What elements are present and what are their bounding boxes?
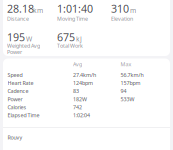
staticText: kJ	[76, 34, 82, 43]
staticText: Total Work	[57, 42, 83, 49]
staticText: Avg	[73, 61, 82, 68]
staticText: W	[26, 34, 32, 43]
staticText: Weighted Avg	[7, 42, 40, 49]
staticText: 94	[120, 87, 126, 95]
staticText: 675	[57, 30, 75, 44]
staticText: 182W	[73, 95, 87, 103]
staticText: 27.4km/h	[73, 71, 96, 78]
staticText: Heart Rate	[7, 79, 33, 87]
staticText: 157bpm	[120, 79, 140, 87]
staticText: Rouvy	[7, 134, 22, 141]
staticText: 195	[7, 30, 25, 44]
staticText: Elevation	[111, 15, 133, 22]
staticText: Elapsed Time	[7, 112, 39, 119]
staticText: 124bpm	[73, 79, 93, 87]
staticText: km	[33, 6, 43, 15]
staticText: 28.18	[7, 1, 34, 16]
staticText: m	[130, 6, 136, 15]
staticText: Power	[7, 48, 22, 55]
staticText: 56.7km/h	[120, 71, 143, 78]
staticText: 310	[111, 1, 129, 16]
staticText: 83	[73, 87, 79, 95]
staticText: 533W	[120, 95, 134, 103]
staticText: 742	[73, 104, 82, 111]
staticText: 1:02:04	[73, 112, 90, 119]
staticText: 1:01:40	[57, 1, 93, 16]
staticText: Speed	[7, 71, 22, 78]
staticText: Power	[7, 95, 22, 103]
staticText: Calories	[7, 104, 26, 111]
staticText: Max	[120, 61, 131, 68]
staticText: Distance	[7, 15, 29, 22]
staticText: Moving Time	[57, 15, 88, 22]
staticText: Cadence	[7, 87, 28, 95]
